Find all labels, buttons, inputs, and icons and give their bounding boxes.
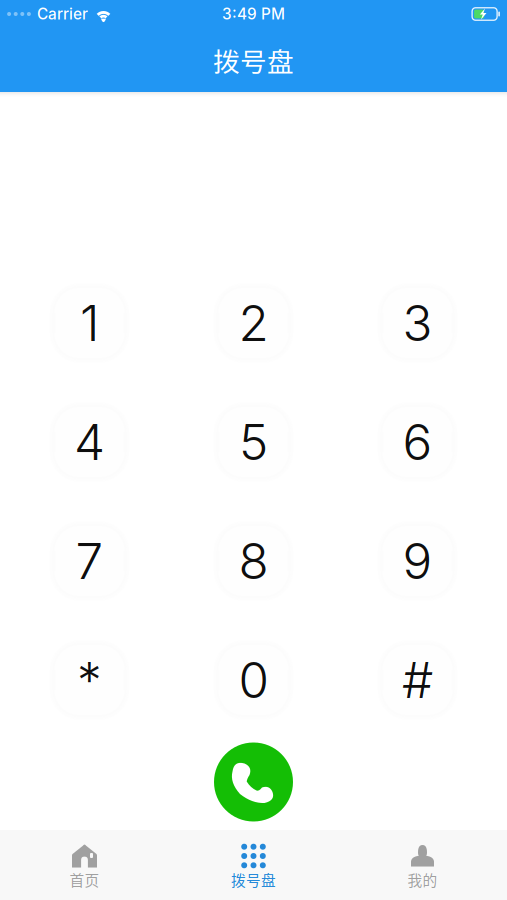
- staticText: 3:49 PM: [222, 5, 285, 23]
- staticText: 4: [74, 412, 105, 472]
- staticText: 3: [402, 293, 432, 353]
- staticText: 拨号盘: [231, 869, 276, 890]
- staticText: 1: [80, 293, 99, 353]
- staticText: 5: [239, 412, 268, 472]
- button[interactable]: 6: [361, 392, 473, 492]
- button[interactable]: 1: [33, 273, 145, 373]
- button[interactable]: 我的: [338, 830, 507, 900]
- staticText: 7: [75, 531, 103, 591]
- staticText: Carrier: [37, 5, 88, 23]
- button[interactable]: Call: [198, 739, 308, 825]
- button[interactable]: 9: [361, 511, 473, 611]
- button[interactable]: #: [361, 630, 473, 730]
- staticText: 0: [238, 650, 268, 710]
- button[interactable]: 拨号盘: [169, 830, 338, 900]
- button[interactable]: 8: [197, 511, 309, 611]
- button[interactable]: 7: [33, 511, 145, 611]
- staticText: *: [77, 650, 102, 710]
- staticText: 6: [402, 412, 432, 472]
- button[interactable]: 首页: [0, 830, 169, 900]
- staticText: 9: [402, 531, 432, 591]
- staticText: 我的: [407, 869, 437, 890]
- staticText: 首页: [69, 869, 99, 890]
- button[interactable]: *: [33, 630, 145, 730]
- staticText: #: [402, 650, 433, 710]
- button[interactable]: 4: [33, 392, 145, 492]
- button[interactable]: 3: [361, 273, 473, 373]
- button[interactable]: 5: [197, 392, 309, 492]
- staticText: 拨号盘: [213, 41, 294, 79]
- staticText: 8: [238, 531, 268, 591]
- staticText: 2: [238, 293, 268, 353]
- button[interactable]: 2: [197, 273, 309, 373]
- button[interactable]: 0: [197, 630, 309, 730]
